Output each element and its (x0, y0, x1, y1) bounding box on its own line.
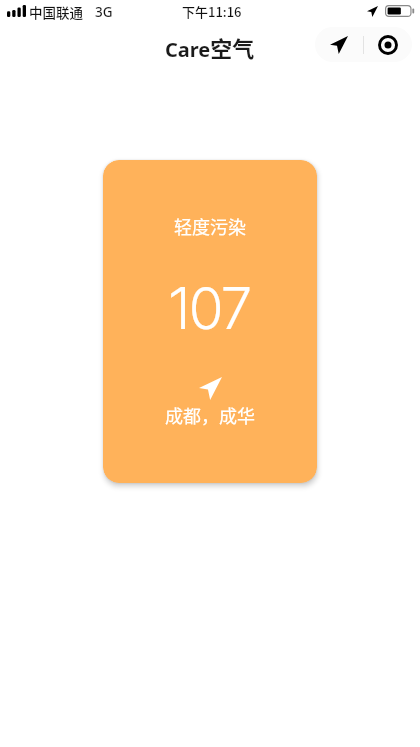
staticText: 成都，成华 (165, 402, 255, 428)
button[interactable]: 轻度污染 (103, 160, 317, 483)
staticText: 下午11:16 (182, 2, 242, 21)
button[interactable]: Locate (315, 27, 363, 62)
staticText: 107 (169, 274, 252, 343)
staticText: 中国联通 (29, 2, 83, 22)
button[interactable]: Record (364, 27, 412, 62)
staticText: 轻度污染 (174, 213, 246, 239)
staticText: 3G (95, 3, 113, 21)
staticText: Care空气 (165, 31, 255, 63)
